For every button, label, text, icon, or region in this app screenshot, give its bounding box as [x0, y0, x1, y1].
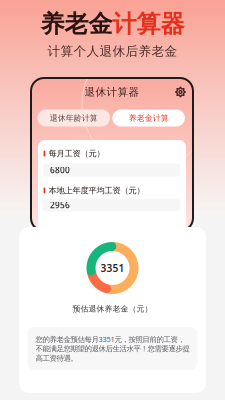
staticText: 养老金计算: [129, 113, 169, 123]
staticText: 退休年龄计算: [50, 113, 98, 123]
button[interactable]: 退休年龄计算: [37, 109, 110, 126]
staticText: 养老金: [40, 9, 112, 39]
staticText: 本地上年度平均工资（元）: [48, 185, 144, 196]
staticText: 6800: [50, 164, 70, 176]
button[interactable]: 设置: [172, 84, 188, 100]
staticText: 计算个人退休后养老金: [47, 43, 177, 59]
staticText: 3351: [100, 261, 124, 275]
staticText: 计算器: [112, 9, 184, 39]
staticText: 每月工资（元）: [48, 148, 104, 159]
button[interactable]: 养老金计算: [112, 109, 185, 126]
staticText: 2956: [50, 199, 70, 211]
staticText: 您的养老金预估每月3351元，按照目前的工资，不能满足您期望的退休后生活水平！您…: [35, 334, 189, 363]
staticText: 退休计算器: [84, 85, 139, 99]
staticText: 预估退休养老金（元）: [72, 304, 152, 314]
